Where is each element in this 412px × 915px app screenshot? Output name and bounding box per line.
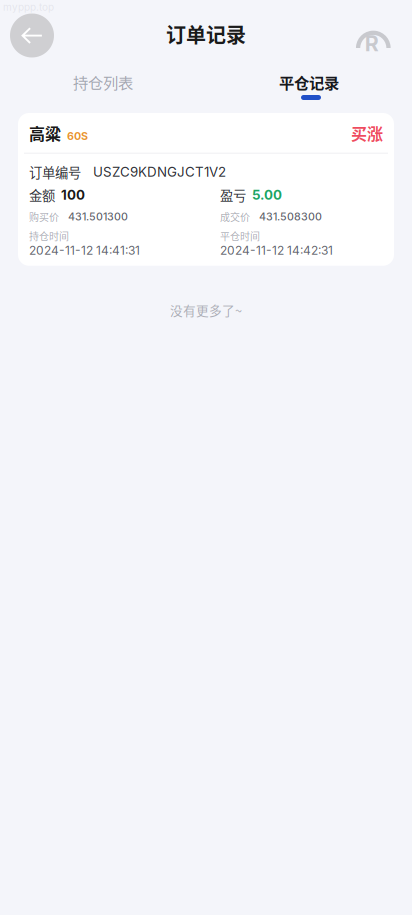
- button[interactable]: Back: [10, 13, 54, 57]
- staticText: USZC9KDNGJCT1V2: [81, 164, 226, 180]
- staticText: 订单记录: [166, 19, 246, 48]
- staticText: 2024-11-12 14:41:31: [29, 243, 140, 258]
- staticText: myppp.top: [3, 1, 54, 13]
- staticText: 盈亏: [220, 185, 246, 205]
- staticText: 购买价: [29, 209, 59, 224]
- staticText: 成交价: [220, 209, 250, 224]
- button[interactable]: 持仓列表: [0, 71, 206, 107]
- staticText: 持仓时间: [29, 229, 69, 243]
- staticText: 100: [55, 187, 85, 203]
- staticText: 平仓记录: [279, 71, 339, 93]
- staticText: 订单编号: [29, 162, 81, 182]
- staticText: 高粱: [29, 121, 61, 145]
- staticText: 没有更多了~: [170, 301, 242, 319]
- staticText: 431.508300: [250, 210, 322, 223]
- staticText: 买涨: [351, 121, 383, 145]
- staticText: 持仓列表: [73, 71, 133, 93]
- staticText: 平仓时间: [220, 229, 260, 243]
- staticText: 2024-11-12 14:42:31: [220, 243, 333, 258]
- staticText: R: [365, 30, 379, 56]
- staticText: 金额: [29, 185, 55, 205]
- button[interactable]: 平仓记录: [206, 71, 412, 107]
- staticText: 5.00: [246, 187, 282, 203]
- staticText: 60S: [61, 130, 88, 143]
- staticText: 431.501300: [59, 210, 128, 223]
